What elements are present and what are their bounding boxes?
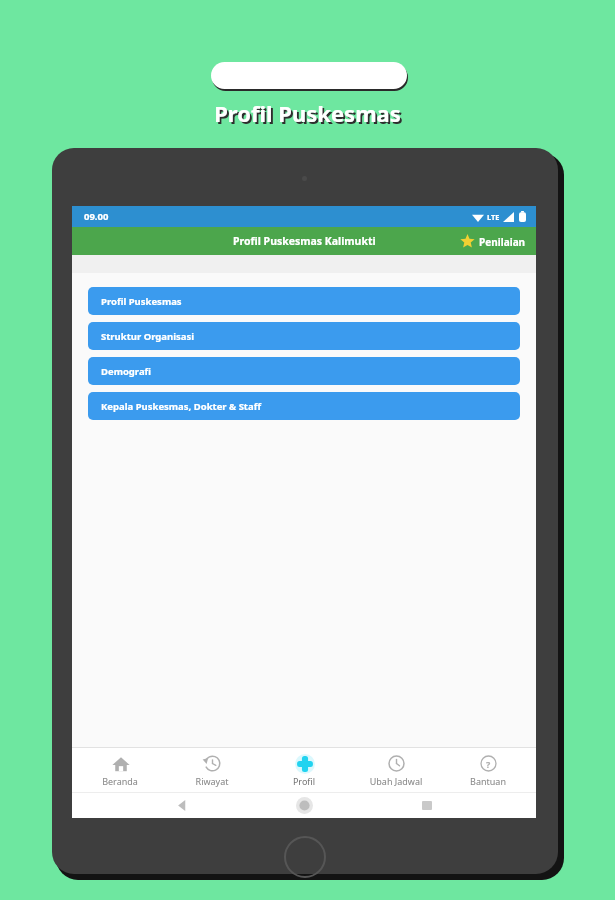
other: Ubah Jadwal [388,755,405,772]
other: Riwayat [204,755,221,772]
other: Profil [296,755,314,773]
staticText: Profil Puskesmas [0,98,615,128]
other: Beranda [112,755,130,773]
staticText: Demografi [101,365,152,378]
button[interactable]: Ubah Jadwal [352,751,440,790]
button[interactable]: Back [169,792,195,818]
button[interactable]: Kepala Puskesmas, Dokter & Staff [88,392,520,420]
staticText: Profil [260,775,348,787]
staticText: Penilaian [479,235,526,249]
button[interactable]: Profil [260,751,348,790]
button[interactable] [211,62,407,89]
button[interactable]: Riwayat [168,751,256,790]
button[interactable]: Penilaian [460,234,526,249]
staticText: Struktur Organisasi [101,330,195,343]
button[interactable]: Recents [414,792,440,818]
button[interactable]: Struktur Organisasi [88,322,520,350]
button[interactable]: Bantuan [444,751,532,790]
button[interactable]: Demografi [88,357,520,385]
staticText: Ubah Jadwal [352,775,440,787]
button[interactable]: Profil Puskesmas [88,287,520,315]
staticText: LTE [487,212,500,222]
staticText: Riwayat [168,775,256,787]
other: Bantuan [480,755,497,772]
staticText: ? [486,758,491,770]
staticText: Profil Puskesmas [101,295,182,308]
staticText: Kepala Puskesmas, Dokter & Staff [101,400,262,413]
button[interactable]: Home [291,792,317,818]
staticText: Bantuan [444,775,532,787]
button[interactable]: Beranda [76,751,164,790]
staticText: Profil Puskesmas [2,100,615,130]
staticText: Beranda [76,775,164,787]
staticText: Profil Puskesmas Kalimukti [233,234,376,248]
staticText: 09.00 [84,210,109,223]
